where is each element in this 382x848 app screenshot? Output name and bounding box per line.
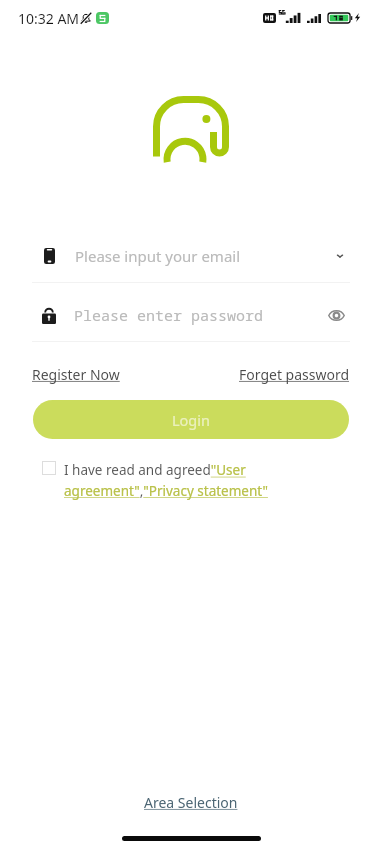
button[interactable]: Please input your email bbox=[44, 230, 345, 282]
staticText: Please enter password bbox=[74, 305, 264, 325]
staticText: 10:32 AM bbox=[18, 9, 80, 28]
other: Show password bbox=[328, 310, 345, 321]
staticText: Login bbox=[172, 410, 210, 430]
button[interactable]: Forget password bbox=[239, 365, 350, 384]
button[interactable]: Register Now bbox=[32, 365, 120, 384]
button[interactable]: Agree bbox=[42, 461, 56, 475]
staticText: Area Selection bbox=[144, 793, 238, 812]
button[interactable]: Please enter password bbox=[42, 289, 345, 341]
button[interactable]: Login bbox=[33, 400, 349, 439]
button[interactable]: Area Selection bbox=[0, 793, 382, 812]
staticText: Please input your email bbox=[75, 246, 241, 266]
staticText: I have read and agreed"User agreement","… bbox=[64, 461, 350, 500]
staticText: Forget password bbox=[239, 365, 350, 384]
other: Expand bbox=[335, 251, 345, 261]
staticText: Register Now bbox=[32, 365, 120, 384]
